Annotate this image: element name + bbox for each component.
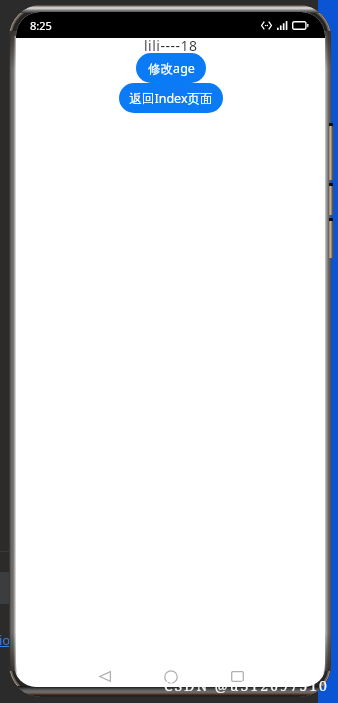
staticText: CSDN @u312697510 (164, 676, 329, 695)
staticText: lili----18 (144, 36, 198, 55)
button[interactable]: Recent apps (224, 666, 250, 687)
button[interactable]: 修改age (136, 53, 206, 83)
staticText: 修改age (148, 60, 195, 77)
button[interactable]: 返回Index页面 (119, 83, 223, 113)
button[interactable]: Home (158, 666, 184, 687)
staticText: 8:25 (30, 18, 52, 33)
staticText: 返回Index页面 (129, 90, 213, 107)
button[interactable]: Back (92, 666, 118, 687)
staticText: io (0, 631, 11, 649)
